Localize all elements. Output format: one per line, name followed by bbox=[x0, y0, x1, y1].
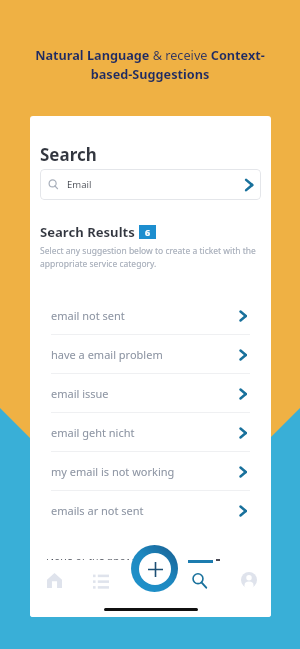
staticText: my email is not working bbox=[51, 464, 175, 479]
button[interactable]: my email is not working bbox=[30, 452, 271, 491]
staticText: 6 bbox=[145, 226, 151, 238]
staticText: emails ar not sent bbox=[51, 503, 144, 518]
staticText: email not sent bbox=[51, 308, 125, 323]
button[interactable]: Profile bbox=[236, 567, 262, 593]
button[interactable]: emails ar not sent bbox=[30, 491, 271, 530]
staticText: have a email problem bbox=[51, 347, 163, 362]
button[interactable]: email not sent bbox=[30, 296, 271, 335]
button[interactable]: Home bbox=[41, 567, 67, 593]
button[interactable]: email issue bbox=[30, 374, 271, 413]
button[interactable]: Email bbox=[40, 169, 261, 200]
button[interactable]: Search bbox=[186, 567, 212, 593]
staticText: Select any suggestion below to create a … bbox=[40, 245, 259, 270]
button[interactable]: have a email problem bbox=[30, 335, 271, 374]
button[interactable]: email geht nicht bbox=[30, 413, 271, 452]
staticText: Email bbox=[67, 178, 92, 191]
staticText: Search bbox=[40, 143, 97, 166]
staticText: email issue bbox=[51, 386, 109, 401]
button[interactable]: List bbox=[88, 568, 114, 594]
staticText: Natural Language & receive Context-based… bbox=[26, 46, 274, 82]
staticText: email geht nicht bbox=[51, 425, 135, 440]
staticText: None of the above work? bbox=[46, 549, 169, 563]
button[interactable]: Add bbox=[131, 545, 178, 592]
staticText: Search Results bbox=[40, 223, 135, 241]
